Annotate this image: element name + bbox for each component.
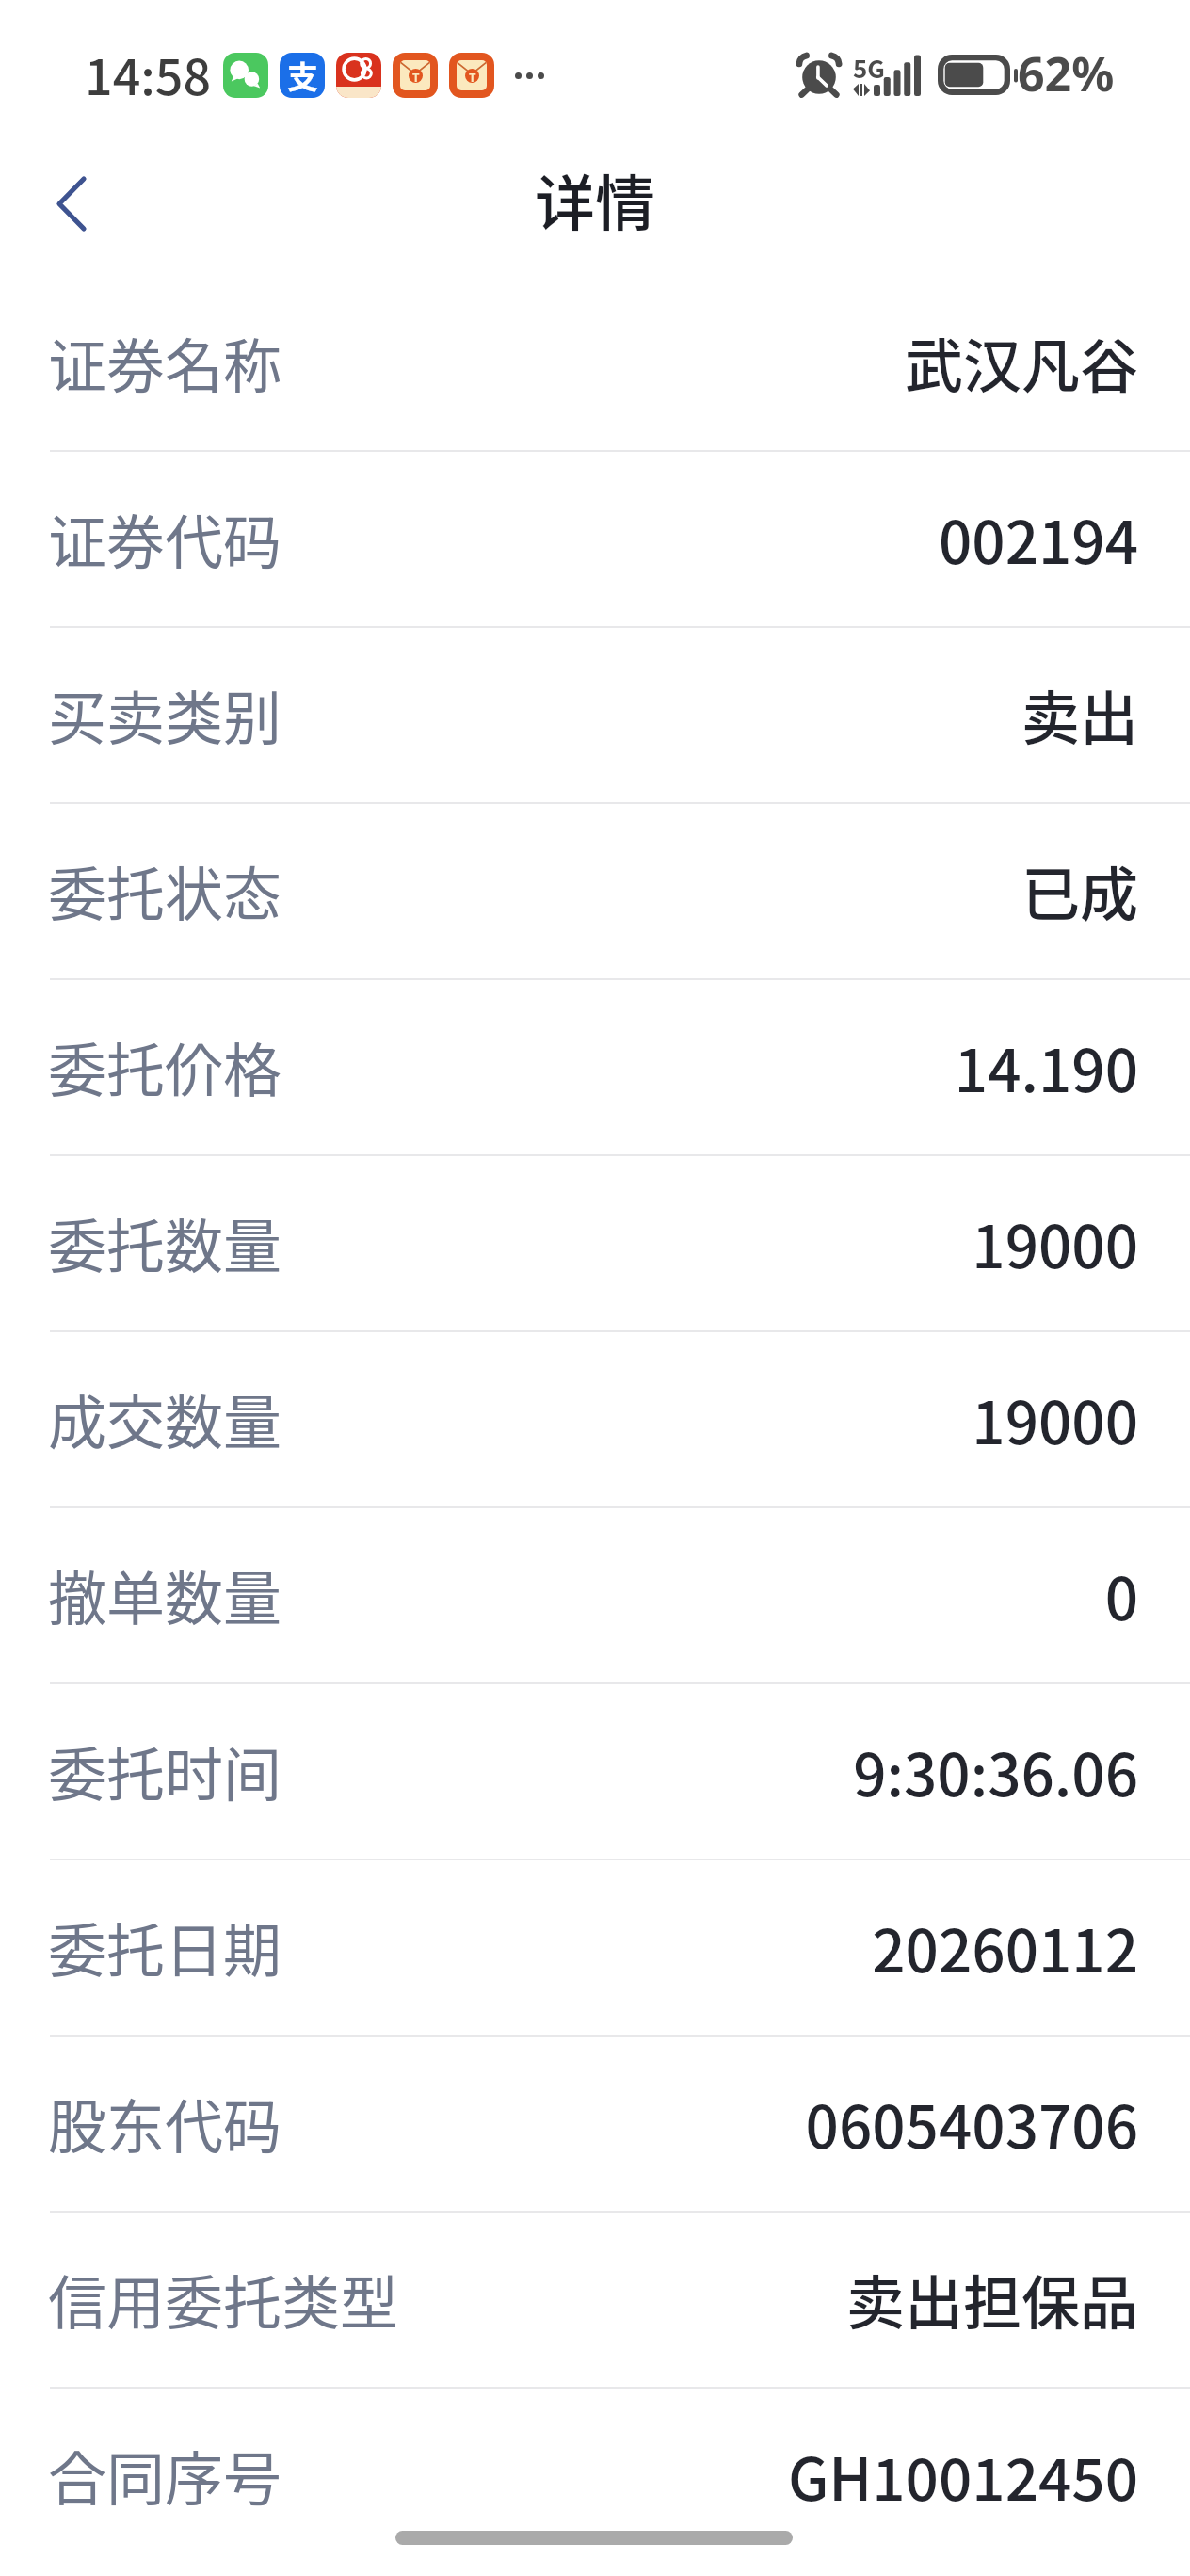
button[interactable]: Back [15, 148, 119, 251]
staticText: 证券代码 [48, 496, 282, 581]
staticText: 买卖类别 [48, 672, 282, 757]
staticText: GH10012450 [787, 2433, 1138, 2518]
staticText: 委托日期 [48, 1905, 282, 1989]
staticText: T [412, 69, 420, 83]
staticText: 信用委托类型 [48, 2257, 399, 2342]
button[interactable]: 证券代码 [0, 452, 1190, 628]
staticText: 14.190 [954, 1024, 1138, 1109]
staticText: 证券名称 [48, 320, 282, 405]
staticText: 19000 [972, 1377, 1138, 1461]
staticText: 20260112 [872, 1905, 1138, 1989]
button[interactable]: 证券名称 [0, 276, 1190, 452]
button[interactable]: 股东代码 [0, 2037, 1190, 2213]
button[interactable]: 委托状态 [0, 804, 1190, 980]
staticText: 合同序号 [48, 2433, 282, 2518]
staticText: 武汉凡谷 [904, 320, 1138, 405]
staticText: 卖出 [1021, 672, 1138, 757]
staticText: 14:58 [85, 39, 212, 109]
staticText: 19000 [972, 1200, 1138, 1285]
staticText: 委托时间 [48, 1729, 282, 1813]
staticText: 5G [853, 50, 885, 86]
button[interactable]: 合同序号 [0, 2389, 1190, 2565]
staticText: 委托价格 [48, 1024, 282, 1109]
staticText: 委托数量 [48, 1200, 282, 1285]
staticText: 委托状态 [48, 848, 282, 933]
staticText: 卖出担保品 [845, 2257, 1138, 2342]
button[interactable]: 委托时间 [0, 1684, 1190, 1860]
button[interactable]: 买卖类别 [0, 628, 1190, 804]
staticText: 0 [1104, 1553, 1138, 1637]
staticText: 撤单数量 [48, 1553, 282, 1637]
staticText: 支 [287, 53, 318, 98]
button[interactable]: 委托数量 [0, 1156, 1190, 1332]
staticText: 已成 [1021, 848, 1138, 933]
staticText: 0605403706 [805, 2081, 1138, 2165]
button[interactable]: 信用委托类型 [0, 2213, 1190, 2389]
staticText: 9:30:36.06 [853, 1729, 1138, 1813]
staticText: T [469, 69, 476, 83]
button[interactable]: 委托日期 [0, 1860, 1190, 2037]
button[interactable]: 撤单数量 [0, 1508, 1190, 1684]
button[interactable]: 成交数量 [0, 1332, 1190, 1508]
staticText: 62% [1018, 41, 1115, 105]
button[interactable]: 委托价格 [0, 980, 1190, 1156]
staticText: 详情 [535, 155, 655, 243]
staticText: 002194 [938, 496, 1138, 581]
staticText: 股东代码 [48, 2081, 282, 2165]
staticText: 成交数量 [48, 1377, 282, 1461]
